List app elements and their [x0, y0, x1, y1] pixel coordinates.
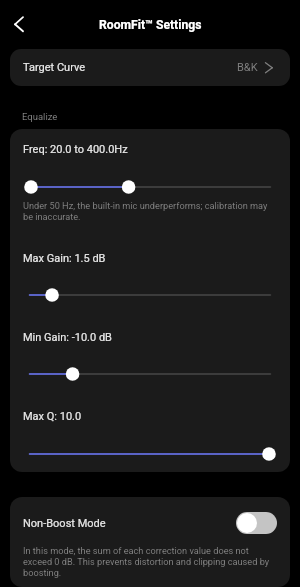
staticText: In this mode, the sum of each correction… — [23, 545, 277, 578]
staticText: Target Curve — [23, 61, 86, 74]
button[interactable]: Slider — [23, 287, 277, 303]
staticText: RoomFit™ Settings — [99, 18, 202, 32]
staticText: Min Gain: -10.0 dB — [23, 331, 112, 344]
button[interactable]: Back — [7, 9, 37, 39]
staticText: B&K — [237, 61, 258, 74]
staticText: Non-Boost Mode — [23, 517, 236, 530]
button[interactable]: Frequency range slider — [23, 179, 277, 195]
staticText: Equalize — [22, 111, 58, 122]
staticText: Under 50 Hz, the built-in mic underperfo… — [23, 200, 277, 222]
staticText: Freq: 20.0 to 400.0Hz — [23, 143, 128, 156]
staticText: Max Q: 10.0 — [23, 410, 82, 423]
staticText: Max Gain: 1.5 dB — [23, 252, 106, 265]
button[interactable]: Target Curve — [10, 49, 290, 86]
button[interactable]: Slider — [23, 446, 277, 462]
button[interactable]: Slider — [23, 366, 277, 382]
button[interactable]: Non-Boost Mode — [23, 511, 277, 535]
